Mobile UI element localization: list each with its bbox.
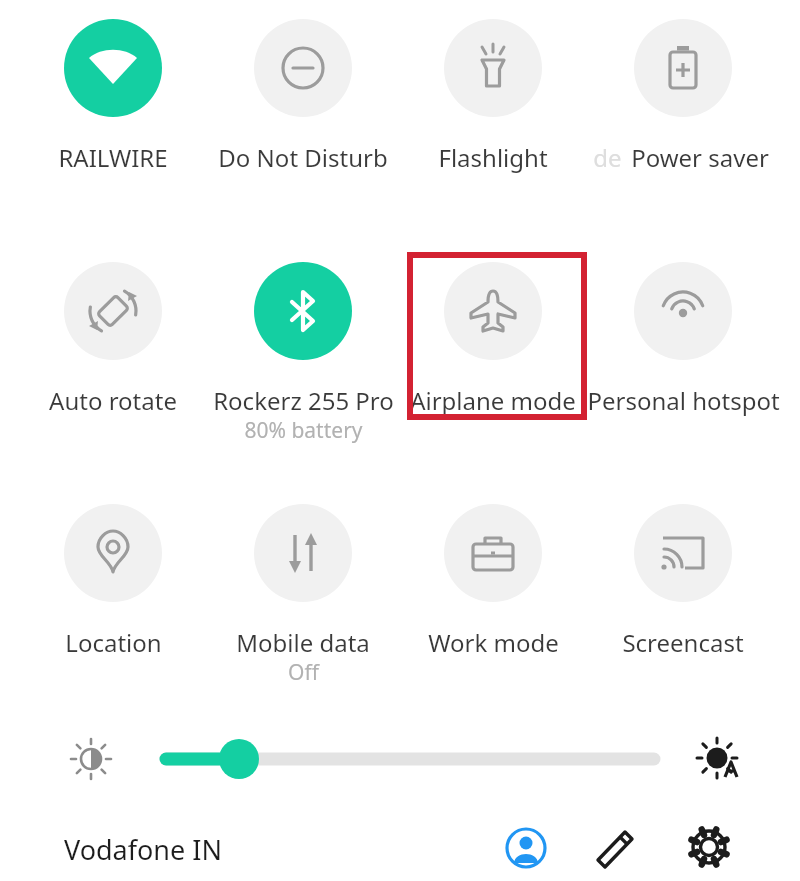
button[interactable]: Wi-Fi RAILWIRE	[64, 19, 162, 117]
button[interactable]: Bluetooth Rockerz 255 Pro	[254, 262, 352, 360]
staticText: Mobile data	[236, 626, 370, 659]
staticText: Vodafone IN	[64, 831, 222, 868]
button[interactable]: Brightness slider	[160, 738, 660, 780]
button[interactable]: Work mode	[444, 504, 542, 602]
staticText: Power saver	[631, 141, 769, 174]
staticText: Airplane mode	[410, 384, 576, 417]
button[interactable]: Settings	[682, 820, 736, 874]
staticText: 80% battery	[244, 416, 363, 445]
staticText: RAILWIRE	[58, 141, 168, 174]
button[interactable]: Flashlight	[444, 19, 542, 117]
button[interactable]: Edit	[590, 822, 642, 874]
staticText: Do Not Disturb	[218, 141, 388, 174]
staticText: Off	[288, 658, 319, 687]
staticText: Work mode	[428, 626, 559, 659]
button[interactable]: Brightness low	[62, 730, 120, 788]
button[interactable]: Auto brightness	[690, 728, 750, 788]
staticText: Rockerz 255 Pro	[213, 384, 394, 417]
button[interactable]: Mobile data	[254, 504, 352, 602]
staticText: Personal hotspot	[587, 384, 780, 417]
button[interactable]: Personal hotspot	[634, 262, 732, 360]
button[interactable]: Location	[64, 504, 162, 602]
button[interactable]: User	[502, 824, 550, 872]
button[interactable]: Do Not Disturb	[254, 19, 352, 117]
staticText: de	[593, 141, 622, 174]
button[interactable]: Auto rotate	[64, 262, 162, 360]
button[interactable]: Screencast	[634, 504, 732, 602]
staticText: Flashlight	[438, 141, 548, 174]
staticText: Auto rotate	[49, 384, 177, 417]
button[interactable]: Airplane mode	[444, 262, 542, 360]
staticText: Location	[65, 626, 162, 659]
button[interactable]: Power saver	[634, 19, 732, 117]
staticText: Screencast	[622, 626, 744, 659]
